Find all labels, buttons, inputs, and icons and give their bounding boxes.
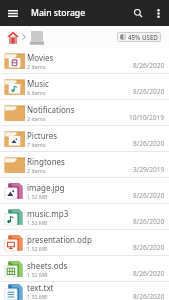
button[interactable]: text.txt xyxy=(0,282,169,300)
button[interactable]: Music xyxy=(0,74,169,100)
staticText: 6 items xyxy=(27,89,46,96)
button[interactable]: Pictures xyxy=(0,126,169,152)
staticText: 10/10/2019 xyxy=(129,113,165,122)
button[interactable]: sheets.ods xyxy=(0,256,169,282)
staticText: 8/26/2020 xyxy=(133,191,165,200)
staticText: 2 items xyxy=(27,115,46,122)
staticText: Notifications xyxy=(27,104,75,115)
staticText: 1.52 MB xyxy=(27,293,48,300)
staticText: sheets.ods xyxy=(27,260,68,271)
staticText: music.mp3 xyxy=(27,208,69,219)
staticText: presentation.odp xyxy=(27,234,92,245)
button[interactable]: Search xyxy=(128,3,148,23)
staticText: 1.52 MB xyxy=(27,193,48,200)
staticText: 8/26/2020 xyxy=(133,61,165,70)
staticText: text.txt xyxy=(27,282,54,293)
button[interactable]: presentation.odp xyxy=(0,230,169,256)
staticText: Movies xyxy=(27,52,54,63)
button[interactable]: music.mp3 xyxy=(0,204,169,230)
staticText: 8/26/2020 xyxy=(133,217,165,226)
button[interactable]: Ringtones xyxy=(0,152,169,178)
staticText: 3/29/2019 xyxy=(133,165,165,174)
staticText: Music xyxy=(27,78,49,89)
button[interactable]: More options xyxy=(148,3,168,23)
staticText: 7 items xyxy=(27,141,46,148)
staticText: 45% USED xyxy=(128,33,158,41)
button[interactable]: Movies xyxy=(0,48,169,74)
staticText: 1.52 MB xyxy=(27,219,48,226)
staticText: Ringtones xyxy=(27,156,65,167)
staticText: 8/26/2020 xyxy=(133,87,165,96)
button[interactable]: Notifications xyxy=(0,100,169,126)
staticText: 2 items xyxy=(27,167,46,174)
staticText: 8/26/2020 xyxy=(133,292,165,300)
button[interactable]: Internal storage xyxy=(29,30,44,45)
button[interactable]: image.jpg xyxy=(0,178,169,204)
staticText: 8/26/2020 xyxy=(133,243,165,252)
staticText: 1.52 MB xyxy=(27,245,48,252)
staticText: 8/26/2020 xyxy=(133,139,165,148)
button[interactable]: 45% USED xyxy=(117,32,161,42)
staticText: Main storage xyxy=(31,7,86,19)
button[interactable]: Menu xyxy=(4,4,22,22)
staticText: 2 items xyxy=(27,63,46,70)
staticText: 1.52 MB xyxy=(27,271,48,278)
staticText: image.jpg xyxy=(27,182,65,193)
staticText: 8/26/2020 xyxy=(133,269,165,278)
button[interactable]: Home xyxy=(7,30,19,44)
staticText: Pictures xyxy=(27,130,58,141)
